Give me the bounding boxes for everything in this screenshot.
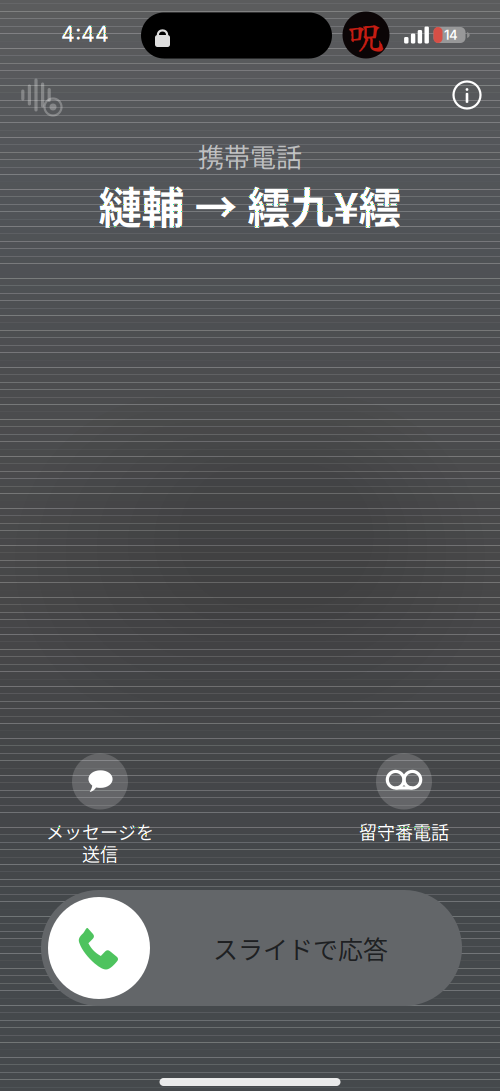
staticText: 14 bbox=[444, 27, 458, 43]
button[interactable]: Send message bbox=[12, 753, 187, 864]
staticText: 送信 bbox=[82, 840, 118, 867]
button[interactable]: Voicemail bbox=[316, 753, 491, 842]
staticText: 4:44 bbox=[61, 21, 109, 47]
staticText: 縺輔 → 繧九¥繧 bbox=[98, 174, 401, 236]
staticText: 留守番電話 bbox=[359, 818, 449, 845]
staticText: 携帯電話 bbox=[198, 137, 302, 175]
staticText: メッセージを bbox=[46, 818, 154, 845]
button[interactable]: Call details bbox=[444, 72, 490, 118]
button[interactable]: Slide to answer bbox=[41, 890, 462, 1006]
staticText: スライドで応答 bbox=[213, 930, 388, 966]
button[interactable]: Call recording bbox=[11, 70, 69, 124]
staticText: 呪 bbox=[348, 10, 383, 60]
